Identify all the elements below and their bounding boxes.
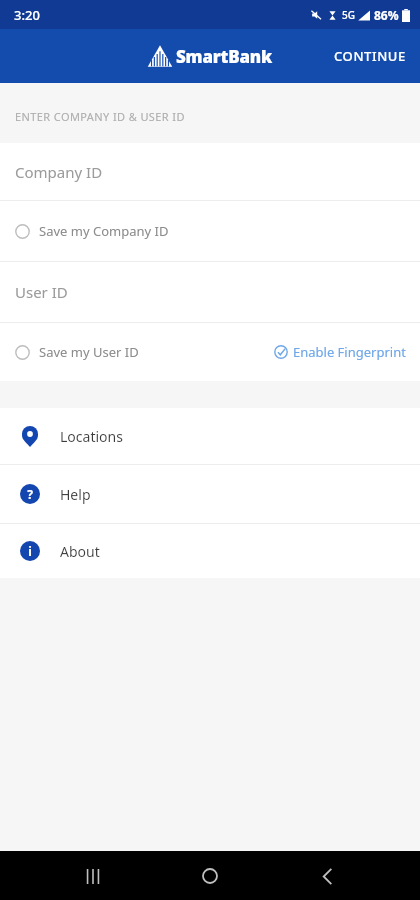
staticText: ENTER COMPANY ID & USER ID bbox=[15, 109, 185, 124]
button[interactable]: Recent apps bbox=[69, 852, 117, 900]
staticText: ? bbox=[27, 486, 33, 502]
button[interactable]: User ID bbox=[0, 262, 420, 322]
staticText: About bbox=[60, 542, 100, 561]
button[interactable]: Back bbox=[303, 852, 351, 900]
staticText: SmartBank bbox=[176, 45, 273, 68]
staticText: Help bbox=[60, 485, 91, 504]
staticText: Save my User ID bbox=[39, 343, 139, 361]
staticText: Locations bbox=[60, 427, 123, 446]
staticText: Company ID bbox=[15, 162, 103, 182]
button[interactable]: ? bbox=[0, 465, 420, 523]
button[interactable]: Home bbox=[186, 852, 234, 900]
button[interactable]: Company ID bbox=[0, 143, 420, 200]
button[interactable]: i bbox=[0, 524, 420, 578]
staticText: User ID bbox=[15, 282, 68, 302]
staticText: Save my Company ID bbox=[39, 222, 169, 240]
button[interactable]: Save my User ID bbox=[0, 335, 147, 369]
button[interactable]: Save my Company ID bbox=[0, 214, 177, 248]
staticText: CONTINUE bbox=[334, 47, 406, 65]
staticText: 3:20 bbox=[14, 6, 40, 24]
button[interactable]: Enable Fingerprint bbox=[266, 335, 420, 369]
button[interactable]: Locations bbox=[0, 408, 420, 464]
staticText: 5G bbox=[342, 8, 355, 22]
staticText: i bbox=[28, 543, 32, 559]
staticText: 86% bbox=[374, 7, 399, 23]
button[interactable]: CONTINUE bbox=[320, 35, 420, 77]
staticText: Enable Fingerprint bbox=[293, 343, 406, 361]
